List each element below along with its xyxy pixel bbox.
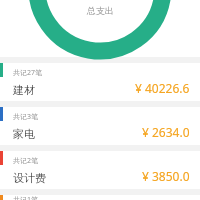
staticText: 共记2笔 (13, 156, 39, 166)
staticText: 设计费 (13, 171, 46, 185)
staticText: ¥ 2634.0 (142, 124, 190, 140)
staticText: 共记1笔 (13, 195, 39, 200)
staticText: 共记3笔 (13, 112, 39, 122)
staticText: ¥ 40226.6 (135, 80, 190, 96)
staticText: 建材 (13, 83, 35, 97)
staticText: 共记27笔 (13, 68, 43, 78)
staticText: 家电 (13, 127, 35, 141)
staticText: 总支出 (87, 5, 114, 16)
staticText: ¥ 3850.0 (142, 168, 190, 184)
button[interactable]: 共记1笔 (0, 195, 200, 200)
button[interactable]: 共记3笔 (0, 107, 200, 145)
button[interactable]: 共记2笔 (0, 151, 200, 189)
button[interactable]: 共记27笔 (0, 63, 200, 101)
